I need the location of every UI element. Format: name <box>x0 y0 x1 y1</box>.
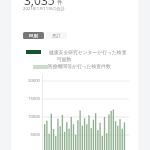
staticText: 健康安全研究センターが行った検査 <box>49 49 127 55</box>
button[interactable]: 累計 <box>46 32 67 39</box>
staticText: 件 <box>57 0 63 6</box>
staticText: 累計 <box>52 33 61 39</box>
button[interactable]: 日別 <box>23 32 44 39</box>
staticText: 10000 <box>19 114 40 120</box>
staticText: 日別 <box>29 33 38 39</box>
staticText: 3,035 <box>24 0 55 8</box>
staticText: 5000 <box>19 132 40 138</box>
staticText: 医療機関等が行った検査件数 <box>48 63 111 69</box>
staticText: 2021年1月11日の合計 <box>23 6 65 12</box>
staticText: 15000 <box>19 96 40 102</box>
staticText: 可能数 <box>57 56 72 62</box>
staticText: 20000 <box>19 78 40 84</box>
